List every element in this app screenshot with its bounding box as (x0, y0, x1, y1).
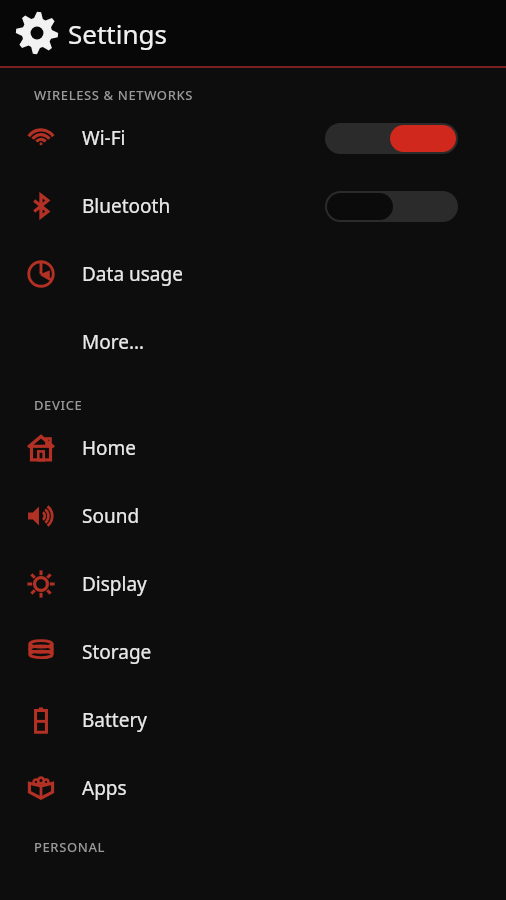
staticText: Data usage (82, 261, 183, 287)
staticText: DEVICE (34, 396, 83, 414)
staticText: PERSONAL (34, 838, 106, 856)
staticText: More… (82, 329, 144, 355)
staticText: Sound (82, 503, 140, 529)
button[interactable]: Sound (0, 482, 506, 550)
staticText: Settings (68, 16, 167, 51)
staticText: Bluetooth (82, 193, 171, 219)
button[interactable]: More… (0, 308, 506, 376)
button[interactable]: Display (0, 550, 506, 618)
staticText: Battery (82, 707, 147, 733)
button[interactable]: Toggle off (325, 191, 458, 222)
staticText: WIRELESS & NETWORKS (34, 86, 194, 104)
button[interactable]: Data usage (0, 240, 506, 308)
button[interactable]: Storage (0, 618, 506, 686)
button[interactable]: Bluetooth (0, 172, 506, 240)
staticText: Display (82, 571, 147, 597)
staticText: Storage (82, 639, 152, 665)
staticText: Wi-Fi (82, 125, 126, 151)
button[interactable]: Toggle on (325, 123, 458, 154)
button[interactable]: Battery (0, 686, 506, 754)
staticText: Home (82, 435, 137, 461)
button[interactable]: Wi-Fi (0, 104, 506, 172)
staticText: Apps (82, 775, 127, 801)
button[interactable]: Apps (0, 754, 506, 822)
button[interactable]: Home (0, 414, 506, 482)
other: Settings (14, 10, 60, 56)
